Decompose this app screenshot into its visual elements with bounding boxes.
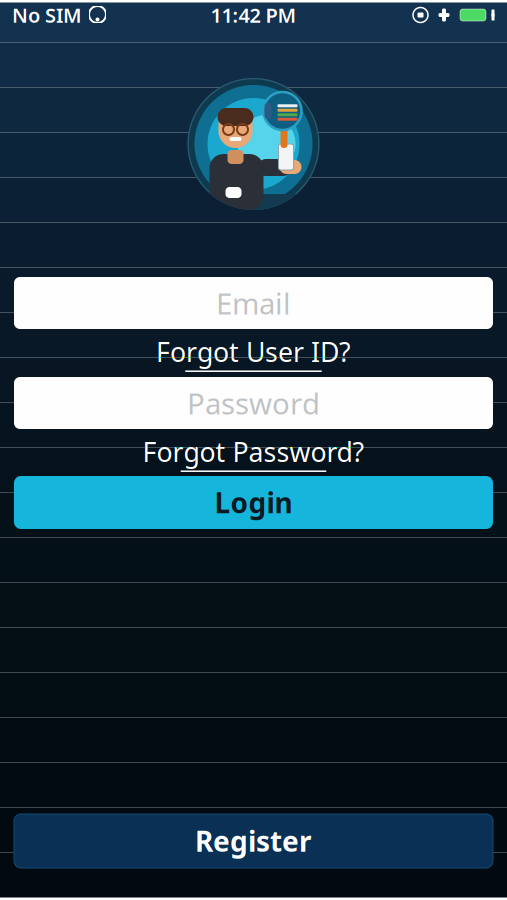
- staticText: Login: [214, 484, 292, 521]
- staticText: 11:42 PM: [210, 2, 296, 28]
- staticText: No SIM: [12, 2, 82, 28]
- staticText: Password: [187, 383, 320, 422]
- staticText: Register: [195, 822, 312, 860]
- button[interactable]: Email: [14, 277, 493, 329]
- staticText: Forgot User ID?: [156, 334, 351, 369]
- staticText: Email: [216, 283, 291, 322]
- staticText: Forgot Password?: [142, 434, 364, 469]
- button[interactable]: Register: [14, 814, 493, 868]
- button[interactable]: Password: [14, 377, 493, 429]
- button[interactable]: Forgot Password?: [14, 435, 493, 471]
- button[interactable]: Login: [14, 476, 493, 529]
- button[interactable]: Forgot User ID?: [14, 335, 493, 371]
